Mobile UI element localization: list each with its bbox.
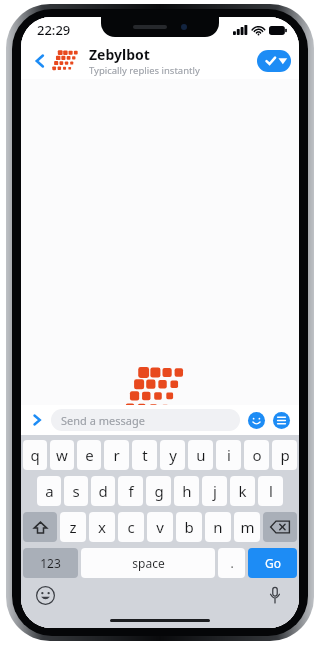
button[interactable]: Send a message [51,409,240,431]
button[interactable]: Send [27,410,47,430]
staticText: s [72,481,80,501]
button[interactable]: s [64,476,88,506]
button[interactable]: Back [29,50,51,72]
staticText: t [142,445,148,465]
staticText: Go [265,555,281,571]
button[interactable]: Emoji [246,410,266,430]
button[interactable]: h [174,476,199,506]
staticText: 22:29 [37,21,71,39]
button[interactable]: y [160,440,185,470]
button[interactable]: o [244,440,269,470]
staticText: Send a message [61,413,145,428]
staticText: j [213,481,217,501]
button[interactable]: Backspace [263,512,297,542]
button[interactable]: n [205,512,231,542]
staticText: v [156,517,164,537]
button[interactable]: Emoji keyboard [33,583,57,607]
staticText: space [132,555,165,571]
button[interactable]: Shift [23,512,57,542]
button[interactable]: b [176,512,202,542]
button[interactable]: Dictate [263,583,287,607]
button[interactable]: . [218,548,245,578]
button[interactable]: p [272,440,297,470]
staticText: b [184,517,194,537]
button[interactable]: r [104,440,129,470]
staticText: l [269,481,273,501]
button[interactable]: k [230,476,255,506]
staticText: k [238,481,247,501]
staticText: n [213,517,223,537]
staticText: 123 [40,555,61,571]
button[interactable]: Zebylbot [89,45,257,77]
button[interactable]: g [146,476,171,506]
staticText: w [56,445,68,465]
button[interactable]: x [89,512,115,542]
button[interactable]: l [258,476,283,506]
staticText: z [69,517,77,537]
button[interactable]: Go [248,548,297,578]
button[interactable]: e [77,440,101,470]
staticText: m [240,517,255,537]
staticText: y [169,445,177,465]
button[interactable]: t [132,440,157,470]
staticText: o [252,445,262,465]
button[interactable]: v [147,512,173,542]
staticText: r [113,445,120,465]
staticText: Typically replies instantly [89,64,200,77]
staticText: q [30,445,40,465]
staticText: u [196,445,206,465]
staticText: p [280,445,290,465]
button[interactable]: c [118,512,144,542]
button[interactable]: j [202,476,227,506]
staticText: a [45,481,54,501]
button[interactable]: d [91,476,115,506]
button[interactable]: Menu [271,410,291,430]
staticText: c [127,517,135,537]
button[interactable]: w [50,440,74,470]
staticText: Zebylbot [89,45,150,64]
staticText: g [154,481,164,501]
button[interactable]: q [23,440,47,470]
staticText: x [98,517,106,537]
staticText: h [182,481,192,501]
button[interactable]: space [81,548,215,578]
button[interactable]: i [216,440,241,470]
button[interactable]: m [234,512,260,542]
staticText: . [230,555,234,571]
staticText: f [128,481,134,501]
staticText: i [227,445,231,465]
button[interactable]: a [37,476,61,506]
button[interactable]: f [118,476,143,506]
staticText: d [98,481,108,501]
staticText: e [85,445,94,465]
button[interactable]: u [188,440,213,470]
button[interactable]: 123 [23,548,78,578]
button[interactable]: Confirm [257,50,291,72]
button[interactable]: z [60,512,86,542]
